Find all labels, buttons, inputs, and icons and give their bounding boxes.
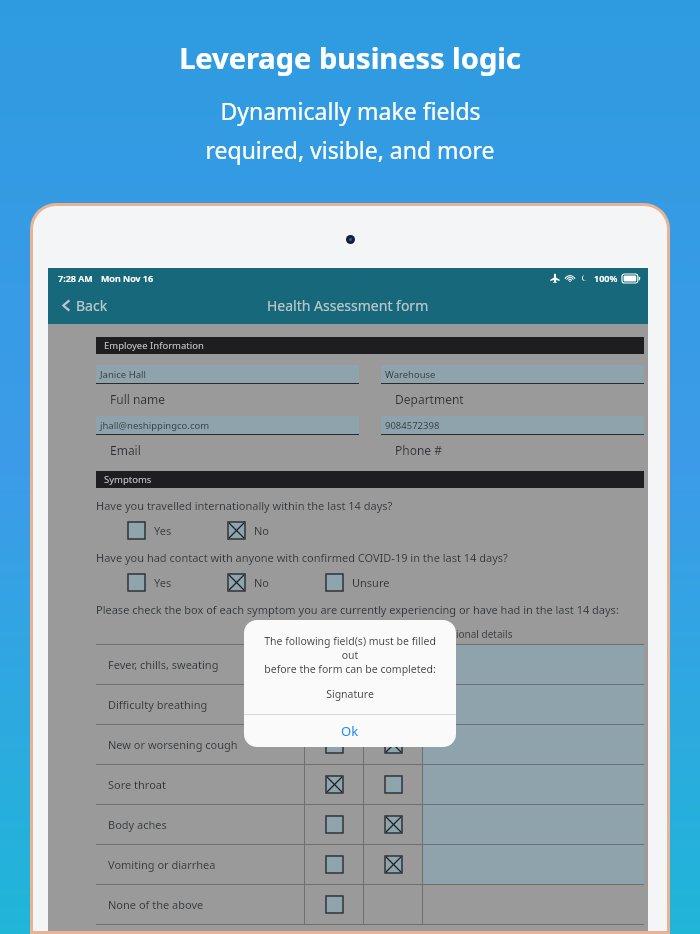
button[interactable]: Fever, chills, sweating <box>96 645 644 684</box>
staticText: Sore throat <box>108 777 166 792</box>
staticText: 9084572398 <box>385 419 440 432</box>
button[interactable]: Body aches <box>96 805 644 844</box>
button[interactable]: No <box>226 520 272 541</box>
button[interactable]: Vomiting or diarrhea <box>96 845 644 884</box>
button[interactable]: Janice Hall <box>96 365 359 407</box>
staticText: None of the above <box>108 897 204 912</box>
staticText: Additional details <box>431 627 513 641</box>
staticText: Have you had contact with anyone with co… <box>96 550 508 565</box>
staticText: Yes <box>154 523 172 538</box>
staticText: Department <box>395 391 464 407</box>
staticText: Leverage business logic <box>179 38 521 77</box>
staticText: Unsure <box>352 575 390 590</box>
staticText: Have you travelled internationally withi… <box>96 498 393 513</box>
button[interactable]: Difficulty breathing <box>96 685 644 724</box>
staticText: Employee Information <box>104 339 204 352</box>
staticText: The following field(s) must be filled ou… <box>256 634 444 662</box>
button[interactable]: Yes <box>126 572 174 593</box>
button[interactable]: Back <box>56 292 112 319</box>
staticText: Health Assessment form <box>267 296 429 315</box>
staticText: Ok <box>341 722 359 740</box>
button[interactable]: Yes <box>126 520 174 541</box>
staticText: New or worsening cough <box>108 737 238 752</box>
button[interactable]: 9084572398 <box>381 416 644 458</box>
staticText: Mon Nov 16 <box>101 272 154 284</box>
staticText: Body aches <box>108 817 167 832</box>
button[interactable]: New or worsening cough <box>96 725 644 764</box>
staticText: Email <box>110 442 141 458</box>
staticText: Back <box>76 296 108 315</box>
staticText: Warehouse <box>385 368 436 381</box>
button[interactable]: None of the above <box>96 885 644 924</box>
staticText: Phone # <box>395 442 442 458</box>
button[interactable]: Sore throat <box>96 765 644 804</box>
staticText: Signature <box>326 687 374 701</box>
staticText: Difficulty breathing <box>108 697 208 712</box>
staticText: Yes <box>154 575 172 590</box>
button[interactable]: Warehouse <box>381 365 644 407</box>
staticText: Full name <box>110 391 166 407</box>
staticText: Vomiting or diarrhea <box>108 857 216 872</box>
button[interactable]: jhall@neshippingco.com <box>96 416 359 458</box>
staticText: jhall@neshippingco.com <box>100 419 210 432</box>
staticText: Fever, chills, sweating <box>108 657 219 672</box>
staticText: Dynamically make fields <box>220 95 481 126</box>
staticText: required, visible, and more <box>205 134 495 165</box>
staticText: No <box>254 575 270 590</box>
button[interactable]: Unsure <box>324 572 392 593</box>
staticText: 100% <box>594 272 618 284</box>
staticText: No <box>254 523 270 538</box>
staticText: Symptoms <box>104 473 152 486</box>
staticText: before the form can be completed: <box>264 662 436 676</box>
staticText: 7:28 AM <box>58 272 93 284</box>
staticText: Please check the box of each symptom you… <box>96 602 619 617</box>
button[interactable]: No <box>226 572 272 593</box>
staticText: Janice Hall <box>100 368 146 381</box>
button[interactable]: Ok <box>244 715 456 747</box>
